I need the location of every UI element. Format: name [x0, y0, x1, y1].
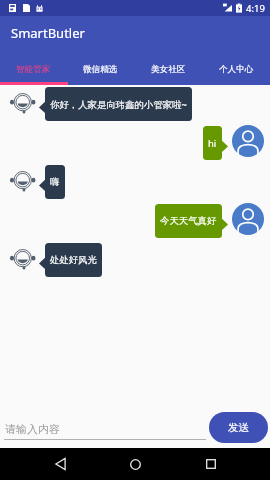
button[interactable]: 智能管家	[0, 57, 67, 82]
staticText: 个人中心	[219, 64, 254, 75]
button[interactable]: 个人中心	[202, 57, 270, 82]
button[interactable]: Back	[44, 448, 76, 480]
staticText: 今天天气真好	[160, 215, 217, 227]
staticText: 嗨	[50, 176, 60, 188]
button[interactable]: 发送	[209, 412, 268, 443]
button[interactable]: 微信精选	[67, 57, 134, 82]
button[interactable]: Recents	[195, 448, 227, 480]
button[interactable]: Home	[119, 448, 151, 480]
staticText: 请输入内容	[5, 422, 60, 436]
staticText: 你好，人家是向玮鑫的小管家啦~	[50, 98, 187, 111]
staticText: 智能管家	[16, 64, 51, 75]
staticText: 4:19	[246, 2, 265, 15]
staticText: SmartButler	[11, 24, 85, 42]
staticText: 微信精选	[83, 64, 118, 75]
staticText: 处处好风光	[50, 254, 97, 266]
button[interactable]: 美女社区	[134, 57, 202, 82]
staticText: 发送	[228, 421, 249, 434]
staticText: hi	[208, 137, 217, 150]
staticText: 美女社区	[151, 64, 186, 75]
